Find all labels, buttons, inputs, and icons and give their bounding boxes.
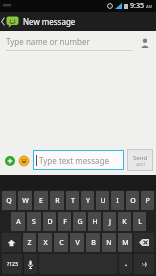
button[interactable]: C xyxy=(54,233,68,252)
staticText: S xyxy=(32,217,36,227)
staticText: ?123 xyxy=(7,261,18,268)
staticText: 140/1 xyxy=(135,162,146,167)
staticText: T xyxy=(71,196,75,206)
button[interactable]: Type text message xyxy=(33,150,124,170)
staticText: L xyxy=(138,217,142,227)
button[interactable]: T xyxy=(66,191,79,210)
staticText: C xyxy=(59,238,64,248)
staticText: H xyxy=(92,217,98,227)
staticText: K xyxy=(122,217,127,227)
button[interactable]: A xyxy=(11,212,25,231)
staticText: D xyxy=(47,217,53,227)
button[interactable]: P xyxy=(141,191,154,210)
staticText: 9:35 xyxy=(130,1,144,11)
staticText: A xyxy=(16,217,21,227)
button[interactable]: F xyxy=(58,212,71,231)
button[interactable]: Back xyxy=(0,12,6,31)
staticText: V xyxy=(75,238,80,248)
button[interactable]: Symbols xyxy=(2,254,22,274)
staticText: Z xyxy=(27,238,32,248)
button[interactable]: L xyxy=(133,212,146,231)
staticText: N xyxy=(106,238,112,248)
staticText: Y xyxy=(86,196,90,206)
button[interactable]: I xyxy=(111,191,124,210)
button[interactable]: Q xyxy=(2,191,16,210)
button[interactable]: K xyxy=(118,212,131,231)
button[interactable]: W xyxy=(18,191,32,210)
button[interactable]: Pick contact xyxy=(138,36,152,50)
staticText: Send xyxy=(133,154,148,162)
staticText: W xyxy=(22,196,29,206)
staticText: :-) xyxy=(142,261,147,268)
button[interactable]: O xyxy=(126,191,139,210)
staticText: B xyxy=(91,238,96,248)
button[interactable]: X xyxy=(38,233,52,252)
button[interactable]: Backspace xyxy=(134,233,154,252)
button[interactable]: G xyxy=(73,212,86,231)
button[interactable]: V xyxy=(70,233,84,252)
button[interactable]: Period xyxy=(119,254,132,274)
button[interactable]: R xyxy=(50,191,64,210)
button[interactable]: Attach xyxy=(3,154,16,167)
staticText: R xyxy=(55,196,60,206)
button[interactable]: M xyxy=(118,233,132,252)
staticText: O xyxy=(130,196,136,206)
staticText: Type name or number xyxy=(6,36,90,47)
staticText: I xyxy=(116,196,119,206)
staticText: Q xyxy=(6,196,12,206)
button[interactable]: Type name or number xyxy=(6,36,132,51)
button[interactable]: S xyxy=(27,212,41,231)
button[interactable]: Emoticon xyxy=(134,254,154,274)
button[interactable]: Z xyxy=(23,233,36,252)
staticText: E xyxy=(39,196,43,206)
staticText: U xyxy=(100,196,106,206)
staticText: AM xyxy=(146,4,153,9)
staticText: New message xyxy=(23,16,76,27)
button[interactable]: Shift xyxy=(2,233,21,252)
staticText: J xyxy=(109,217,111,227)
button[interactable]: N xyxy=(102,233,116,252)
staticText: P xyxy=(145,196,150,206)
staticText: M xyxy=(122,238,129,248)
staticText: Type text message xyxy=(39,155,109,166)
button[interactable]: B xyxy=(86,233,100,252)
button[interactable]: Y xyxy=(81,191,94,210)
staticText: . xyxy=(125,259,127,269)
button[interactable]: J xyxy=(103,212,116,231)
button[interactable]: Voice input xyxy=(24,254,37,274)
button[interactable]: H xyxy=(88,212,101,231)
staticText: F xyxy=(63,217,67,227)
button[interactable]: E xyxy=(34,191,48,210)
staticText: X xyxy=(43,238,48,248)
button[interactable]: U xyxy=(96,191,109,210)
button[interactable]: D xyxy=(43,212,56,231)
button[interactable]: Emoji xyxy=(17,154,30,167)
button[interactable]: Send xyxy=(127,149,153,171)
staticText: G xyxy=(77,217,83,227)
